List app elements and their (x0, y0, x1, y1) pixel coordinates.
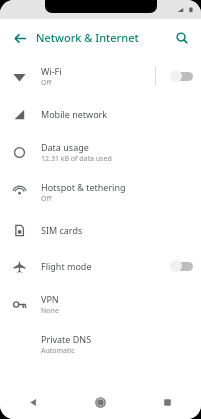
button[interactable]: Flight mode (0, 248, 201, 284)
button[interactable]: Private DNS (0, 324, 201, 364)
staticText: 12.31 kB of data used (41, 154, 112, 164)
staticText: Mobile network (41, 108, 108, 120)
button[interactable]: Back (7, 25, 33, 51)
staticText: Data usage (41, 141, 89, 153)
button[interactable]: Back (0, 386, 67, 419)
staticText: SIM cards (41, 224, 83, 236)
staticText: Network & Internet (36, 30, 139, 45)
button[interactable]: Data usage (0, 132, 201, 172)
button[interactable]: VPN (0, 284, 201, 324)
staticText: Off (41, 194, 52, 204)
staticText: Off (41, 78, 52, 88)
button[interactable]: Wi‑Fi (0, 56, 201, 96)
button[interactable]: Home (67, 386, 134, 419)
button[interactable]: Hotspot & tethering (0, 172, 201, 212)
staticText: Flight mode (41, 260, 92, 272)
button[interactable]: Recent apps (134, 386, 201, 419)
button[interactable]: Wi‑Fi toggle (167, 66, 193, 86)
staticText: VPN (41, 293, 59, 305)
staticText: None (41, 306, 59, 316)
staticText: Hotspot & tethering (41, 181, 126, 193)
staticText: Private DNS (41, 333, 92, 345)
button[interactable]: Mobile network (0, 96, 201, 132)
button[interactable]: Search (170, 26, 194, 50)
button[interactable]: SIM cards (0, 212, 201, 248)
staticText: Wi‑Fi (41, 65, 62, 77)
button[interactable]: Flight mode toggle (167, 256, 193, 276)
staticText: Automatic (41, 346, 75, 356)
